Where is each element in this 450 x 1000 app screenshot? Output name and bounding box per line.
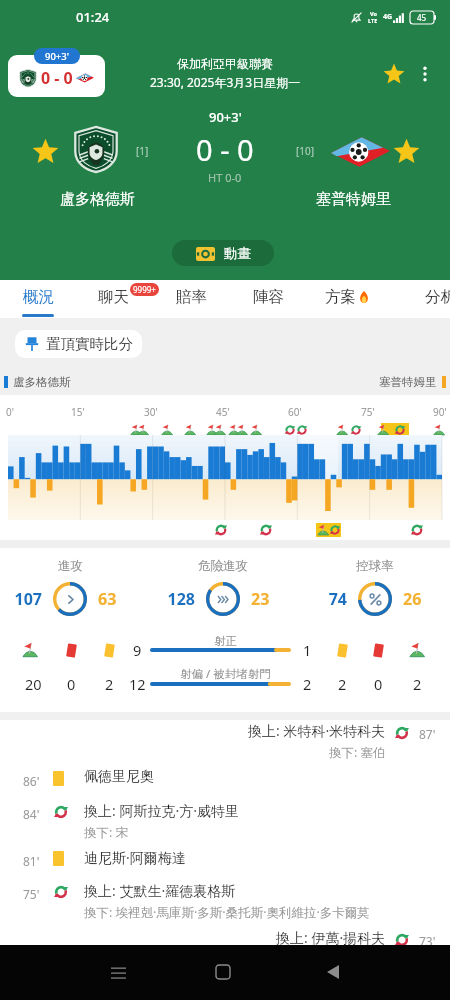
staticText: 盧多格德斯 bbox=[60, 190, 135, 209]
button[interactable]: Back bbox=[313, 952, 353, 992]
staticText: 86' bbox=[23, 773, 40, 789]
staticText: 30' bbox=[144, 405, 158, 419]
staticText: 73' bbox=[419, 933, 436, 949]
staticText: 75' bbox=[361, 405, 375, 419]
button[interactable]: 分析 bbox=[408, 280, 450, 318]
staticText: 75' bbox=[23, 886, 40, 902]
staticText: 進攻 bbox=[58, 558, 83, 574]
button[interactable]: 84' bbox=[0, 800, 450, 847]
staticText: 置頂實時比分 bbox=[46, 335, 133, 353]
staticText: 迪尼斯·阿爾梅達 bbox=[84, 848, 186, 867]
staticText: 60' bbox=[288, 405, 302, 419]
staticText: 4G bbox=[383, 12, 393, 22]
staticText: 0 bbox=[67, 674, 76, 694]
button[interactable]: More options bbox=[410, 59, 440, 89]
staticText: 換下: 塞伯 bbox=[329, 744, 386, 761]
button[interactable]: 86' bbox=[0, 767, 450, 800]
staticText: 佩德里尼奧 bbox=[84, 768, 154, 786]
staticText: 87' bbox=[419, 726, 436, 742]
staticText: 控球率 bbox=[356, 558, 394, 574]
staticText: 盧多格德斯 bbox=[13, 375, 71, 389]
button[interactable]: Recent apps bbox=[98, 952, 138, 992]
staticText: 45 bbox=[417, 12, 427, 23]
staticText: 陣容 bbox=[253, 287, 284, 307]
staticText: [1] bbox=[136, 144, 149, 158]
staticText: 射正 bbox=[214, 634, 237, 648]
staticText: LTE bbox=[368, 17, 378, 24]
staticText: 90+3' bbox=[209, 108, 242, 126]
button[interactable]: 73' bbox=[0, 927, 450, 960]
staticText: 聊天 bbox=[98, 287, 129, 307]
staticText: 23:30, 2025年3月3日星期一 bbox=[150, 74, 301, 90]
staticText: 2 bbox=[303, 674, 312, 694]
staticText: 射偏 / 被封堵射門 bbox=[180, 666, 271, 682]
button[interactable]: 方案 bbox=[315, 280, 379, 318]
staticText: 45' bbox=[216, 405, 230, 419]
staticText: 9999+ bbox=[133, 284, 156, 295]
button[interactable]: 81' bbox=[0, 847, 450, 880]
button[interactable]: 87' bbox=[0, 720, 450, 767]
staticText: 0 bbox=[374, 674, 383, 694]
staticText: 9 bbox=[133, 640, 142, 660]
staticText: 81' bbox=[23, 853, 40, 869]
staticText: 換上: 米特科·米特科夫 bbox=[248, 721, 386, 740]
staticText: 危險進攻 bbox=[198, 558, 248, 574]
button[interactable]: 賠率 bbox=[159, 280, 223, 318]
staticText: 0 - 0 bbox=[196, 130, 254, 169]
staticText: 動畫 bbox=[224, 245, 251, 262]
staticText: 12 bbox=[129, 674, 146, 694]
staticText: 換下: 宋 bbox=[84, 824, 129, 841]
staticText: 84' bbox=[23, 806, 40, 822]
staticText: 換上: 阿斯拉克·方·威特里 bbox=[84, 801, 239, 820]
staticText: 23 bbox=[251, 588, 288, 610]
staticText: 保加利亞甲級聯賽 bbox=[177, 56, 273, 71]
button[interactable]: 置頂實時比分 bbox=[15, 330, 142, 358]
staticText: 128 bbox=[158, 588, 195, 610]
staticText: 賠率 bbox=[176, 287, 207, 307]
button[interactable]: 動畫 bbox=[172, 240, 274, 266]
button[interactable]: Favourite away team bbox=[390, 135, 422, 167]
button[interactable]: Favourite bbox=[378, 58, 410, 90]
staticText: 換下: 埃裡剋·馬庫斯·多斯·桑托斯·奧利維拉·多卡爾莫 bbox=[84, 904, 370, 921]
staticText: 方案 bbox=[325, 287, 356, 307]
staticText: [10] bbox=[296, 144, 315, 158]
staticText: 01:24 bbox=[76, 8, 110, 26]
staticText: 63 bbox=[98, 588, 135, 610]
button[interactable]: 危險進攻 bbox=[148, 558, 298, 616]
staticText: 塞普特姆里 bbox=[316, 190, 391, 209]
staticText: 74 bbox=[310, 588, 347, 610]
staticText: 0' bbox=[6, 405, 14, 419]
button[interactable]: 進攻 bbox=[0, 558, 145, 616]
staticText: HT 0-0 bbox=[208, 170, 242, 185]
button[interactable]: Favourite home team bbox=[29, 135, 61, 167]
staticText: 分析 bbox=[425, 287, 450, 307]
staticText: 2 bbox=[413, 674, 422, 694]
staticText: 0 - 0 bbox=[41, 67, 73, 89]
staticText: 90' bbox=[433, 405, 447, 419]
staticText: 換上: 艾默生·羅德裏格斯 bbox=[84, 881, 236, 900]
staticText: 20 bbox=[25, 674, 42, 694]
staticText: 塞普特姆里 bbox=[379, 375, 437, 389]
staticText: 2 bbox=[338, 674, 347, 694]
button[interactable]: 0 - 0 bbox=[8, 55, 105, 97]
staticText: Vo bbox=[370, 10, 377, 17]
button[interactable]: 75' bbox=[0, 880, 450, 927]
staticText: 90+3' bbox=[45, 50, 69, 63]
staticText: 15' bbox=[71, 405, 85, 419]
staticText: 26 bbox=[403, 588, 440, 610]
staticText: 107 bbox=[5, 588, 42, 610]
button[interactable]: 概況 bbox=[6, 280, 70, 318]
staticText: 換上: 伊萬·揚科夫 bbox=[276, 928, 386, 947]
staticText: 概況 bbox=[23, 287, 54, 307]
button[interactable]: 聊天 bbox=[81, 280, 145, 318]
button[interactable]: 控球率 bbox=[300, 558, 450, 616]
staticText: 2 bbox=[105, 674, 114, 694]
staticText: 1 bbox=[303, 640, 312, 660]
button[interactable]: 陣容 bbox=[236, 280, 300, 318]
button[interactable]: Home bbox=[203, 952, 243, 992]
